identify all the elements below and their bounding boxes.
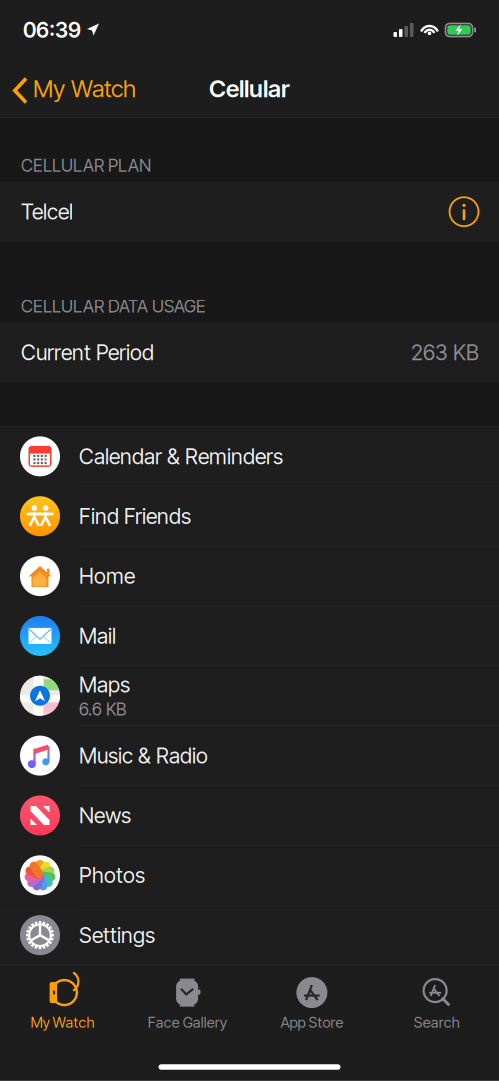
button[interactable]: Current Period [0,323,499,381]
staticText: Maps [79,672,130,698]
button[interactable]: Mail [0,606,499,665]
staticText: Settings [79,922,155,948]
button[interactable]: Telcel [0,183,499,241]
button[interactable]: News [0,786,499,845]
button[interactable]: Home [0,546,499,606]
button[interactable]: Maps [0,666,499,725]
button[interactable]: My Watch [0,63,150,113]
staticText: My Watch [30,1014,94,1031]
staticText: 263 KB [411,339,479,365]
staticText: Music & Radio [79,743,208,768]
staticText: Home [79,563,135,589]
staticText: Current Period [21,339,154,365]
button[interactable]: Settings [0,906,499,965]
button[interactable]: Face Gallery [125,965,250,1035]
staticText: CELLULAR DATA USAGE [21,296,206,317]
staticText: Calendar & Reminders [79,443,283,469]
staticText: Search [414,1014,460,1031]
button[interactable]: App Store [249,965,374,1035]
button[interactable]: My Watch [0,965,125,1035]
staticText: Photos [79,862,145,888]
staticText: My Watch [33,74,136,103]
staticText: App Store [280,1014,343,1031]
button[interactable]: Photos [0,846,499,905]
staticText: CELLULAR PLAN [21,155,151,176]
staticText: 06:39 [23,17,81,43]
button[interactable]: Calendar & Reminders [0,427,499,486]
staticText: News [79,803,131,828]
staticText: 6.6 KB [79,699,126,720]
staticText: Face Gallery [148,1014,227,1031]
staticText: Telcel [21,199,73,225]
button[interactable]: Find Friends [0,487,499,546]
staticText: Mail [79,623,116,649]
button[interactable]: Search [374,965,499,1035]
staticText: Cellular [209,74,290,103]
staticText: Find Friends [79,503,191,529]
button[interactable]: Music & Radio [0,726,499,785]
